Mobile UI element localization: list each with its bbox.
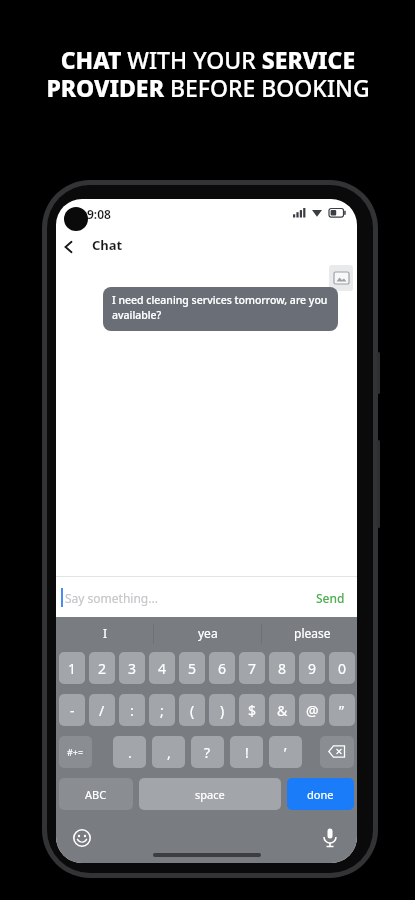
button[interactable]: done	[287, 778, 354, 810]
button[interactable]: Say something...	[56, 577, 357, 617]
staticText: /	[99, 701, 105, 720]
button[interactable]: 4	[149, 652, 175, 684]
button[interactable]: space	[139, 778, 281, 810]
button[interactable]: 8	[269, 652, 295, 684]
staticText: ”	[339, 701, 345, 720]
button[interactable]	[64, 241, 74, 253]
staticText: )	[220, 701, 225, 720]
staticText: 4	[158, 659, 167, 678]
staticText: space	[195, 787, 225, 802]
staticText: 9:08	[87, 206, 111, 222]
staticText: 6	[218, 659, 227, 678]
button[interactable]: I	[103, 625, 108, 641]
staticText: 8	[278, 659, 287, 678]
button[interactable]: yea	[198, 625, 218, 641]
button[interactable]: .	[113, 736, 146, 768]
staticText: I need cleaning services tomorrow, are y…	[112, 293, 328, 322]
button[interactable]: -	[59, 694, 85, 726]
button[interactable]: &	[269, 694, 295, 726]
button[interactable]: ?	[191, 736, 224, 768]
button[interactable]: 3	[119, 652, 145, 684]
button[interactable]: ;	[149, 694, 175, 726]
staticText: #+=	[67, 746, 84, 758]
staticText: .	[128, 743, 132, 762]
staticText: -	[70, 701, 75, 720]
staticText: ,	[167, 743, 171, 762]
button[interactable]: ABC	[59, 778, 133, 810]
button[interactable]: #+=	[59, 736, 92, 768]
staticText: done	[307, 787, 334, 802]
staticText: CHAT WITH YOUR SERVICE PROVIDER BEFORE B…	[46, 44, 370, 104]
button[interactable]: Send	[316, 590, 345, 606]
staticText: @	[306, 701, 319, 720]
staticText: $	[248, 701, 257, 720]
button[interactable]: 2	[89, 652, 115, 684]
staticText: 7	[248, 659, 257, 678]
button[interactable]: 5	[179, 652, 205, 684]
button[interactable]: $	[239, 694, 265, 726]
staticText: ’	[284, 743, 287, 762]
button[interactable]	[320, 736, 354, 768]
staticText: !	[245, 743, 249, 762]
staticText: 1	[68, 659, 77, 678]
staticText: Say something...	[65, 590, 158, 606]
button[interactable]: ”	[329, 694, 355, 726]
button[interactable]: /	[89, 694, 115, 726]
button[interactable]: !	[230, 736, 263, 768]
staticText: &	[277, 701, 288, 720]
button[interactable]: )	[209, 694, 235, 726]
staticText: 5	[188, 659, 197, 678]
staticText: ABC	[85, 787, 107, 802]
staticText: 3	[128, 659, 137, 678]
staticText: ;	[160, 701, 164, 720]
button[interactable]: ,	[152, 736, 185, 768]
button[interactable]: 1	[59, 652, 85, 684]
staticText: 9	[308, 659, 317, 678]
button[interactable]: 9	[299, 652, 325, 684]
button[interactable]: ’	[269, 736, 302, 768]
button[interactable]: :	[119, 694, 145, 726]
button[interactable]: @	[299, 694, 325, 726]
button[interactable]	[72, 828, 92, 848]
staticText: Chat	[92, 236, 123, 254]
button[interactable]: 6	[209, 652, 235, 684]
button[interactable]	[320, 827, 340, 849]
staticText: ?	[204, 743, 211, 762]
button[interactable]: please	[294, 625, 331, 641]
staticText: (	[190, 701, 195, 720]
staticText: :	[130, 701, 134, 720]
button[interactable]: 0	[329, 652, 355, 684]
staticText: 2	[98, 659, 107, 678]
button[interactable]: 7	[239, 652, 265, 684]
staticText: 0	[338, 659, 347, 678]
button[interactable]: (	[179, 694, 205, 726]
